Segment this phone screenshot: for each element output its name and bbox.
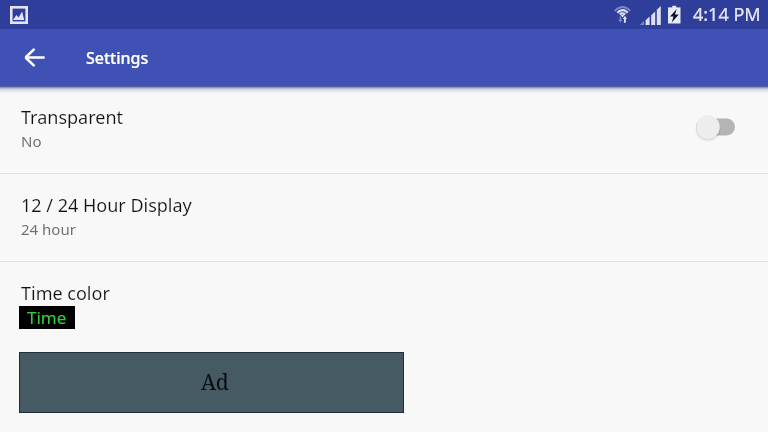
staticText: Transparent: [21, 105, 124, 130]
staticText: 12 / 24 Hour Display: [21, 193, 192, 218]
staticText: 24 hour: [21, 219, 76, 239]
button[interactable]: Transparent toggle: [678, 113, 748, 141]
staticText: Settings: [86, 47, 149, 69]
staticText: Time color: [21, 281, 110, 306]
button[interactable]: Time color: [0, 262, 768, 352]
button[interactable]: Ad: [19, 352, 404, 413]
button[interactable]: Transparent: [0, 86, 768, 173]
button[interactable]: 12 / 24 Hour Display: [0, 174, 768, 261]
staticText: 4:14 PM: [693, 2, 761, 27]
button[interactable]: Back: [10, 29, 58, 86]
staticText: Ad: [201, 368, 229, 397]
staticText: No: [21, 131, 42, 151]
staticText: Time: [27, 306, 67, 329]
